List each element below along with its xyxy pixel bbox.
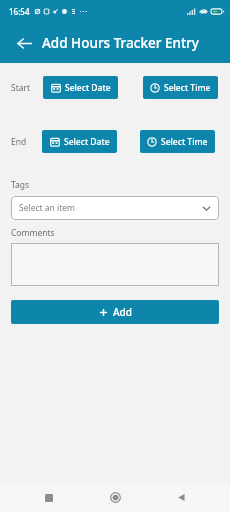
button[interactable]: Comments [11,243,219,286]
button[interactable]: Add [11,300,219,324]
staticText: Add Hours Tracker Entry [42,34,199,52]
staticText: Select Time [164,82,211,94]
staticText: Select Date [64,136,110,148]
staticText: 16:54 [9,6,30,17]
button[interactable]: Select Time [140,130,215,153]
button[interactable]: Home [98,483,132,512]
staticText: ⋯ [79,7,87,16]
button[interactable]: Select Date [43,76,118,99]
button[interactable]: Select Time [143,76,218,99]
staticText: Add [113,305,132,319]
staticText: Select Date [65,82,111,94]
staticText: Select Time [161,136,208,148]
button[interactable]: Back [11,30,37,56]
button[interactable]: Recent apps [32,483,66,512]
staticText: End [11,136,27,148]
staticText: Select an item [19,202,76,214]
button[interactable]: Back [164,483,198,512]
staticText: Tags [11,179,30,191]
staticText: Comments [11,227,55,239]
button[interactable]: Select an item [11,196,219,220]
staticText: Start [11,82,31,94]
button[interactable]: Select Date [42,130,117,153]
